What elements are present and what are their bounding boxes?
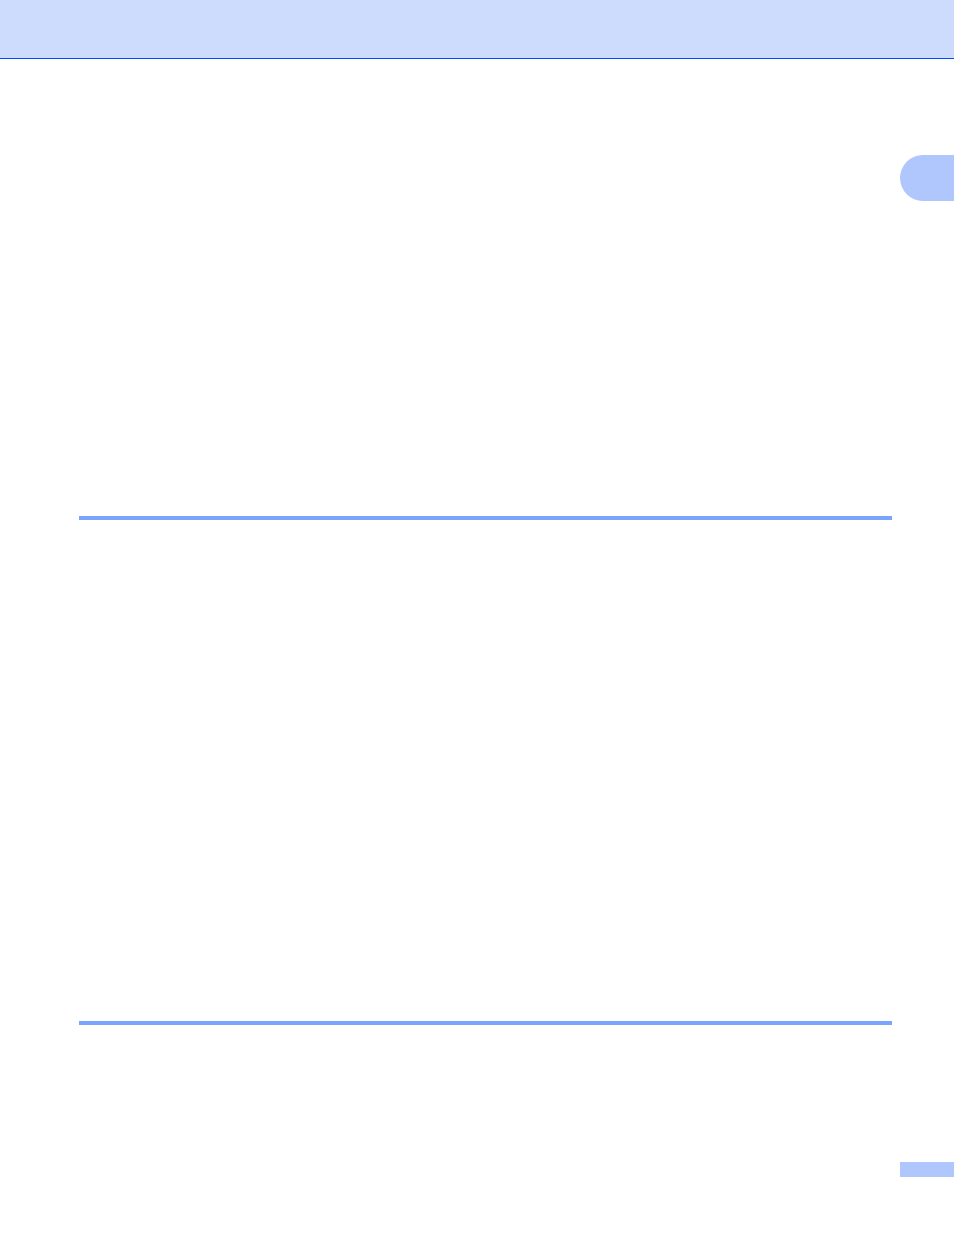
button[interactable]: Chapter tab — [900, 155, 954, 201]
